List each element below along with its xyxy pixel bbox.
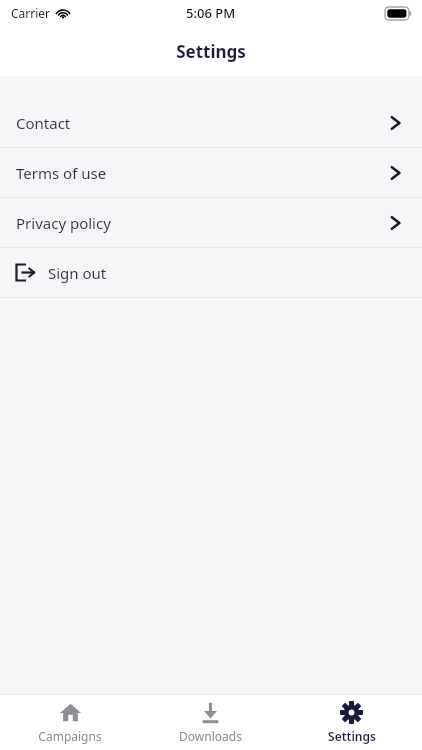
staticText: Settings: [176, 40, 246, 63]
staticText: 5:06 PM: [186, 4, 236, 22]
button[interactable]: Sign out: [0, 248, 422, 297]
staticText: Sign out: [48, 263, 107, 283]
staticText: Downloads: [179, 728, 242, 744]
staticText: Settings: [328, 728, 376, 744]
staticText: Campaigns: [38, 728, 102, 744]
button[interactable]: Downloads: [140, 695, 281, 750]
button[interactable]: Terms of use: [0, 148, 422, 197]
button[interactable]: Campaigns: [0, 695, 140, 750]
staticText: Carrier: [11, 5, 51, 21]
button[interactable]: Contact: [0, 98, 422, 147]
button[interactable]: Settings: [281, 695, 422, 750]
button[interactable]: Privacy policy: [0, 198, 422, 247]
staticText: Contact: [16, 113, 71, 133]
staticText: Privacy policy: [16, 213, 111, 233]
staticText: Terms of use: [16, 163, 107, 183]
